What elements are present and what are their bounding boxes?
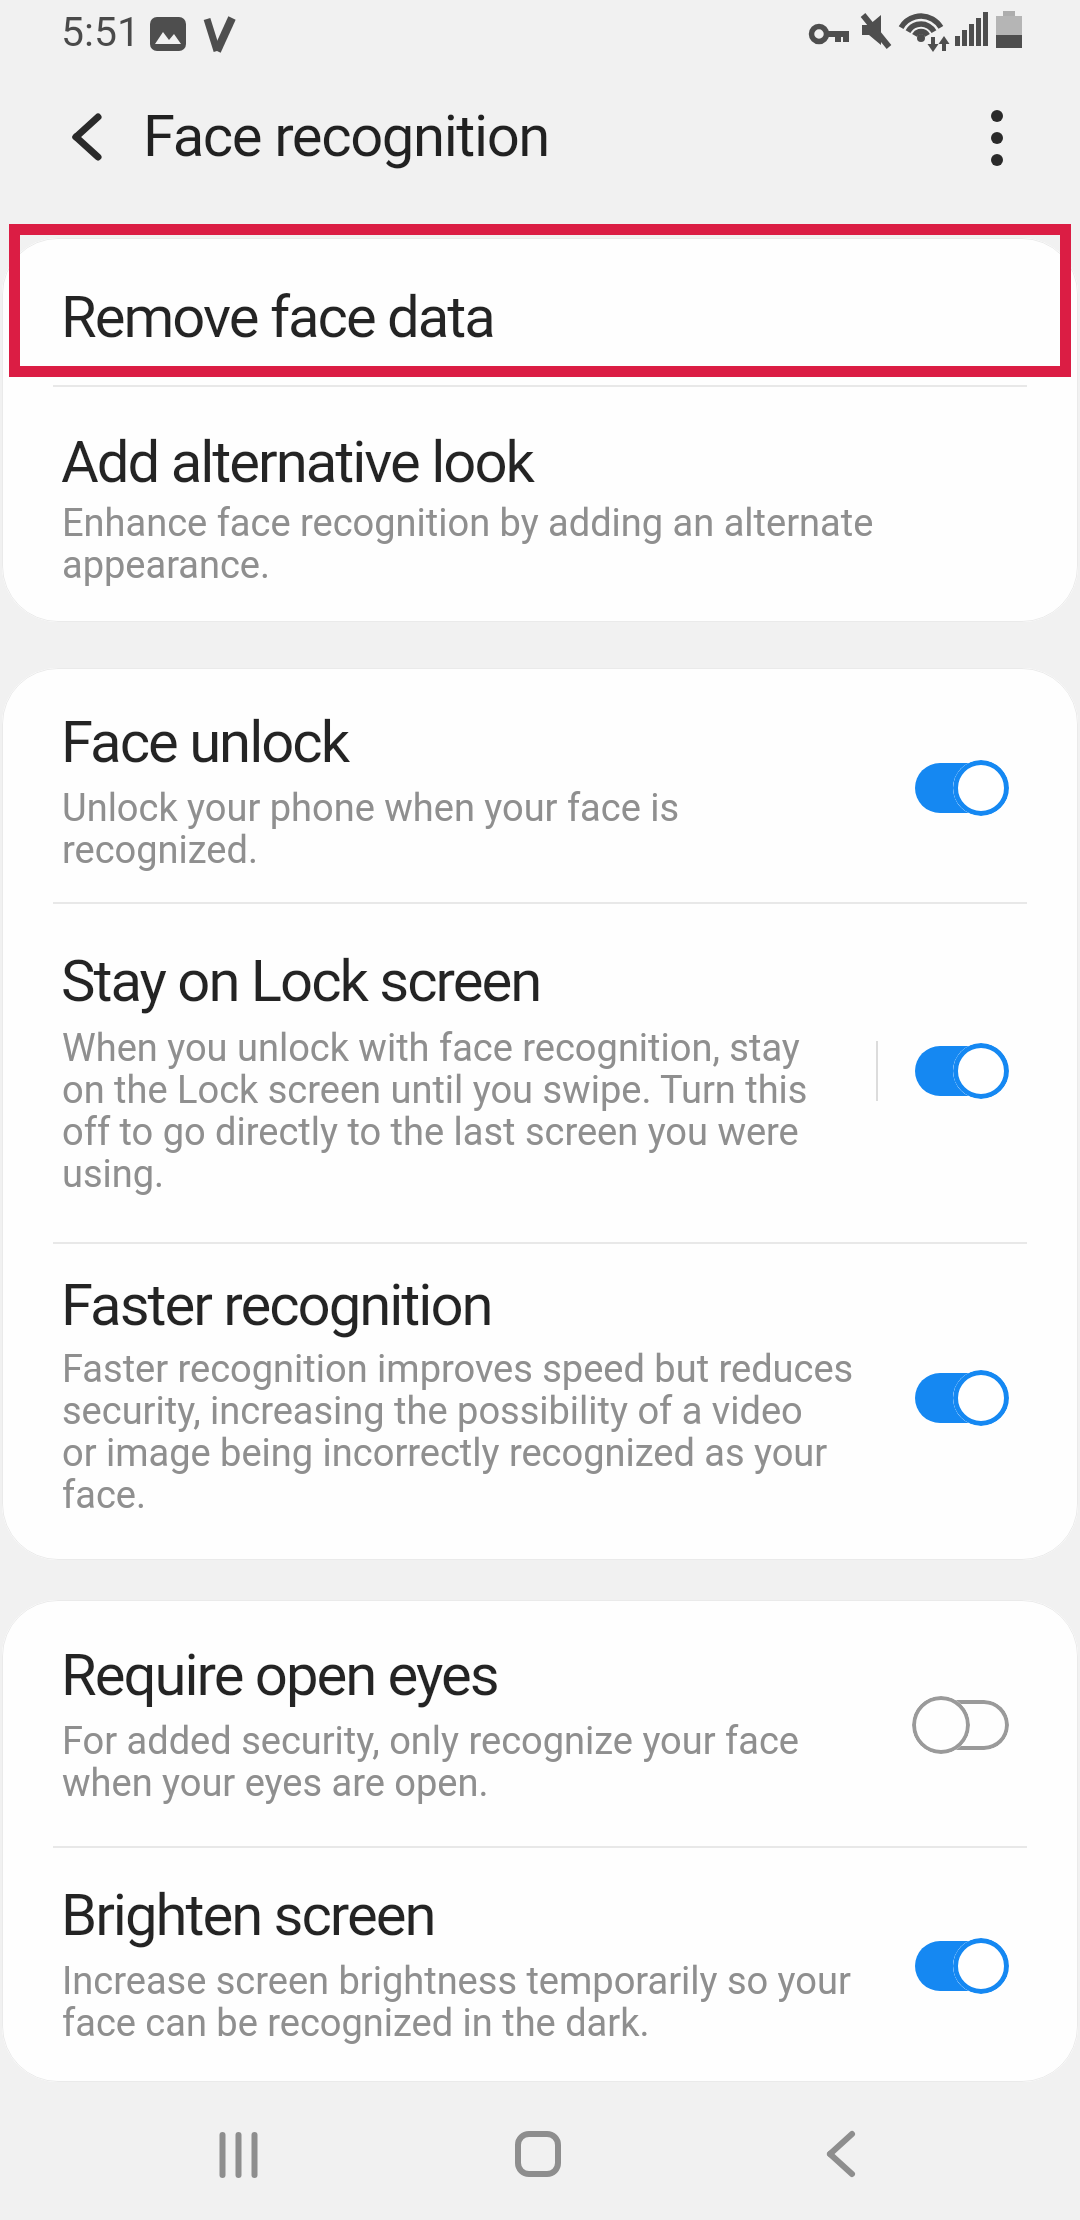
button[interactable] (145, 2093, 325, 2213)
staticText: Face recognition (143, 102, 549, 170)
staticText: For added security, only recognize your … (62, 1719, 799, 1806)
button[interactable] (2, 1243, 1078, 1560)
button[interactable] (915, 1700, 1009, 1750)
button[interactable] (445, 2093, 625, 2213)
staticText: Face unlock (61, 708, 349, 776)
staticText: Faster recognition improves speed but re… (62, 1347, 854, 1518)
staticText: 5:51 (61, 8, 141, 56)
staticText: Require open eyes (61, 1641, 498, 1709)
button[interactable] (2, 1600, 1078, 1847)
button[interactable] (915, 1046, 1009, 1096)
button[interactable] (2, 238, 1078, 386)
staticText: Unlock your phone when your face is reco… (62, 786, 680, 873)
staticText: Add alternative look (61, 428, 533, 496)
staticText: Remove face data (61, 283, 494, 351)
staticText: Stay on Lock screen (61, 947, 541, 1015)
staticText: Faster recognition (61, 1271, 492, 1339)
staticText: Brighten screen (61, 1881, 435, 1949)
button[interactable] (2, 668, 1078, 903)
button[interactable] (915, 1941, 1009, 1991)
button[interactable] (2, 386, 1078, 622)
button[interactable] (960, 100, 1040, 176)
button[interactable] (748, 2093, 928, 2213)
staticText: When you unlock with face recognition, s… (62, 1026, 808, 1197)
button[interactable] (915, 1373, 1009, 1423)
staticText: Enhance face recognition by adding an al… (62, 501, 874, 588)
button[interactable] (915, 763, 1009, 813)
button[interactable] (2, 1847, 1078, 2082)
button[interactable] (40, 100, 130, 174)
button[interactable] (2, 903, 1078, 1243)
staticText: Increase screen brightness temporarily s… (62, 1959, 851, 2046)
